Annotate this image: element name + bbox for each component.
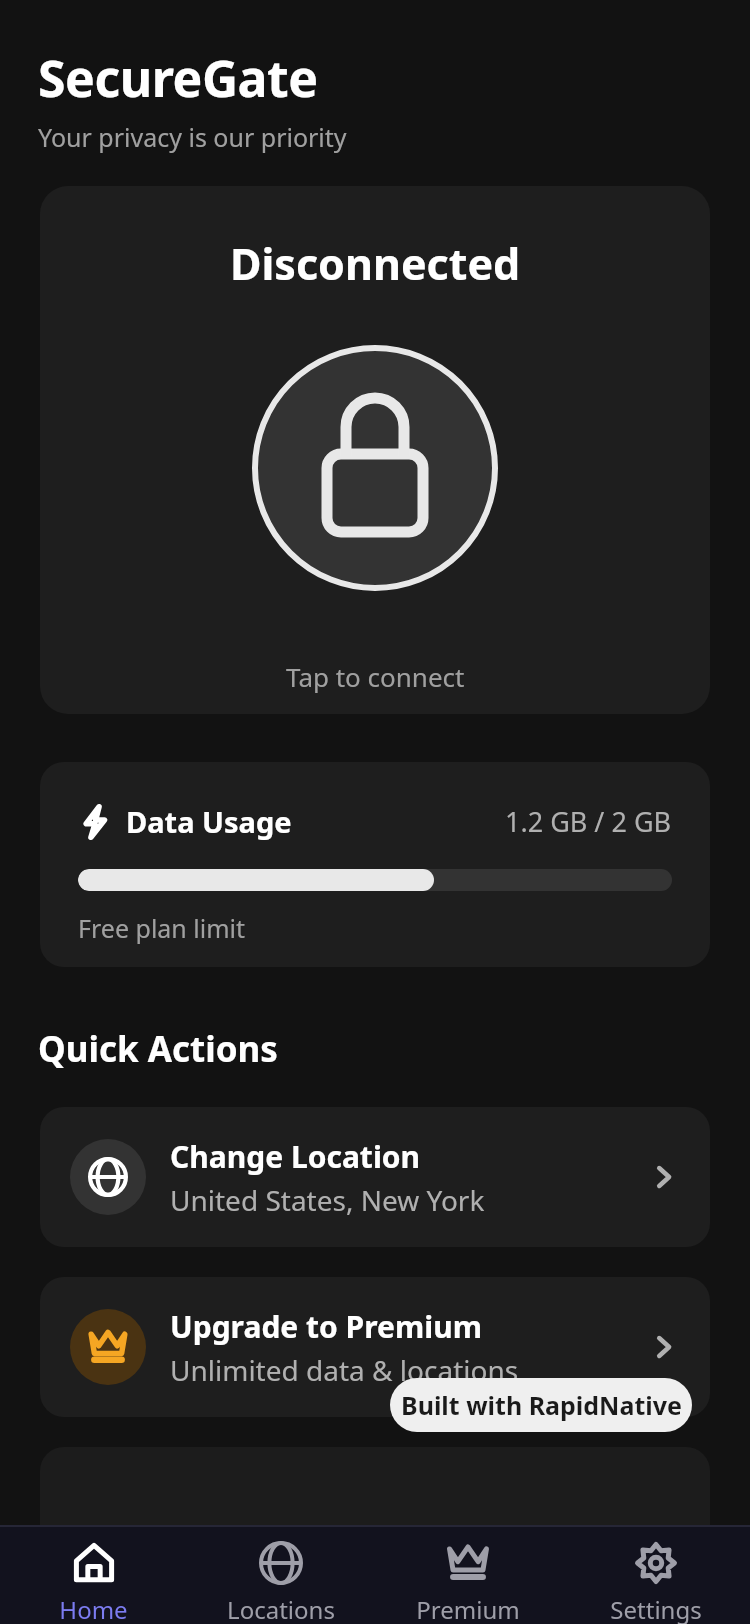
button[interactable]: Premium [374,1527,562,1624]
staticText: Home [59,1593,128,1624]
staticText: Quick Actions [38,1025,278,1073]
button[interactable]: Upgrade to Premium [40,1277,710,1417]
staticText: Tap to connect [286,659,465,694]
staticText: Premium [416,1593,520,1624]
staticText: Change Location [170,1136,421,1177]
staticText: Locations [227,1593,335,1624]
staticText: United States, New York [170,1181,485,1219]
button[interactable]: Locations [187,1527,374,1624]
button[interactable]: Data Usage [40,762,710,967]
staticText: Built with RapidNative [401,1388,682,1422]
staticText: Settings [610,1593,702,1624]
staticText: 1.2 GB / 2 GB [505,803,672,840]
button[interactable]: Disconnected [40,186,710,714]
staticText: SecureGate [38,44,318,112]
button[interactable]: Built with RapidNative [390,1378,692,1432]
staticText: Your privacy is our priority [38,120,347,154]
button[interactable]: Home [0,1527,187,1624]
staticText: Upgrade to Premium [170,1306,482,1347]
staticText: Unlimited data & locations [170,1351,519,1389]
button[interactable]: Settings [562,1527,750,1624]
button[interactable]: Change Location [40,1107,710,1247]
staticText: Free plan limit [78,911,246,945]
staticText: Data Usage [126,802,292,841]
staticText: Disconnected [230,234,521,293]
button[interactable] [40,1447,710,1567]
